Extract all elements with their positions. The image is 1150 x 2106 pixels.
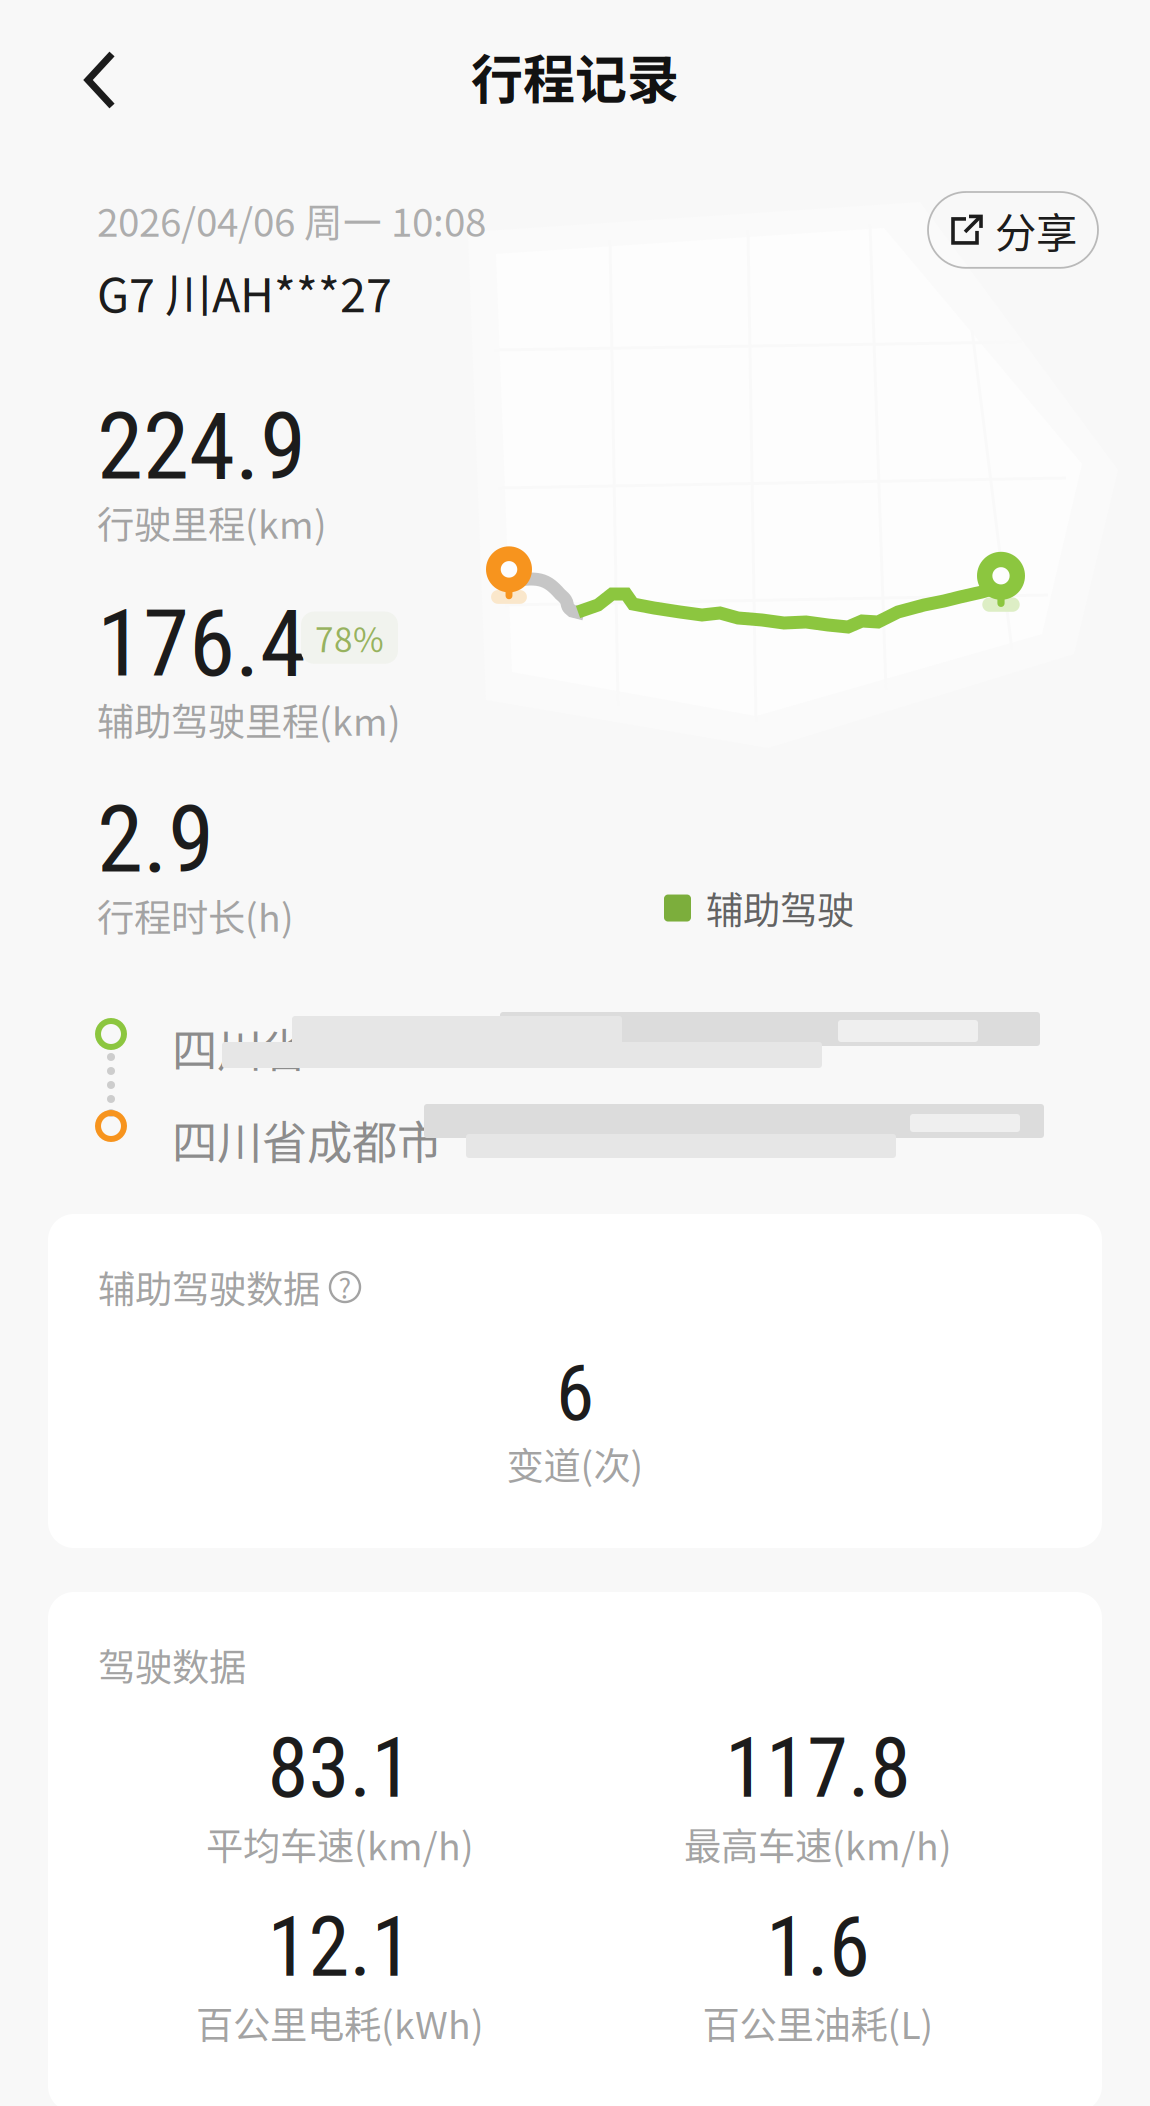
staticText: 行程时长(h) [97,888,294,942]
staticText: 分享 [995,200,1077,260]
staticText: 变道(次) [506,1437,643,1491]
staticText: 行程记录 [471,38,679,114]
staticText: 驾驶数据 [98,1638,246,1692]
button[interactable]: 行程路线地图 [446,536,1046,686]
staticText: ? [338,1268,351,1306]
staticText: 1.6 [766,1899,870,1996]
staticText: 辅助驾驶数据 [98,1260,320,1314]
staticText: 2026/04/06 周一 10:08 [97,192,486,248]
staticText: G7 川AH***27 [97,258,392,326]
staticText: 78% [315,614,384,662]
staticText: 辅助驾驶里程(km) [97,692,401,746]
staticText: 176.4 [97,589,306,698]
staticText: 行驶里程(km) [97,495,327,549]
staticText: 2.9 [97,785,214,894]
staticText: 辅助驾驶 [706,881,854,935]
button[interactable]: 起点与终点地址 [98,1000,1098,1160]
staticText: 12.1 [267,1899,412,1996]
button[interactable]: 分享 [928,192,1098,268]
staticText: 最高车速(km/h) [684,1817,952,1871]
staticText: 117.8 [725,1720,911,1817]
staticText: 百公里油耗(L) [702,1996,933,2050]
staticText: 224.9 [97,392,306,501]
staticText: 四川省成都市 [172,1107,442,1173]
staticText: 83.1 [267,1720,412,1817]
button[interactable]: 返回 [42,24,158,136]
staticText: 平均车速(km/h) [206,1817,474,1871]
staticText: 四川省 [172,1015,307,1081]
staticText: 6 [556,1348,594,1439]
staticText: 百公里电耗(kWh) [196,1996,484,2050]
button[interactable]: 辅助驾驶数据说明 [330,1272,360,1302]
